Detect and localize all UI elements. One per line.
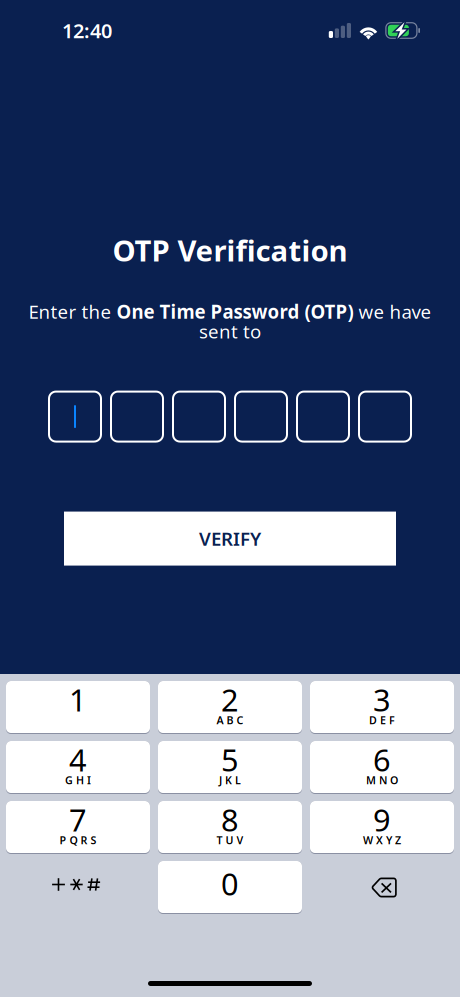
staticText: W X Y Z — [363, 833, 401, 847]
staticText: J K L — [219, 773, 241, 787]
button[interactable]: OTP digit — [111, 392, 163, 442]
staticText: M N O — [366, 773, 398, 787]
staticText: 0 — [221, 863, 239, 904]
button[interactable]: OTP digit — [49, 392, 101, 442]
staticText: 5 — [221, 739, 239, 780]
staticText: G H I — [65, 773, 91, 787]
staticText: OTP Verification — [112, 230, 347, 269]
button[interactable]: Symbols — [6, 861, 150, 913]
staticText: 2 — [221, 679, 239, 720]
button[interactable]: Delete — [310, 861, 454, 913]
button[interactable]: 2 — [158, 681, 302, 734]
button[interactable]: 8 — [158, 801, 302, 854]
staticText: Enter the One Time Password (OTP) we hav… — [28, 299, 431, 324]
staticText: 9 — [373, 799, 391, 840]
button[interactable]: 0 — [158, 861, 302, 914]
button[interactable]: OTP digit — [235, 392, 287, 442]
staticText: 4 — [69, 739, 87, 780]
staticText: sent to — [199, 319, 261, 344]
staticText: 3 — [373, 679, 391, 720]
staticText: 1 — [69, 679, 87, 720]
button[interactable]: 1 — [6, 681, 150, 734]
staticText: 6 — [373, 739, 391, 780]
button[interactable]: 5 — [158, 741, 302, 794]
staticText: VERIFY — [199, 526, 261, 551]
button[interactable]: 3 — [310, 681, 454, 734]
staticText: 8 — [221, 799, 239, 840]
staticText: 12:40 — [62, 17, 112, 44]
staticText: 7 — [69, 799, 87, 840]
staticText: D E F — [369, 713, 395, 727]
button[interactable]: OTP digit — [173, 392, 225, 442]
staticText: P Q R S — [59, 833, 96, 847]
button[interactable]: 4 — [6, 741, 150, 794]
button[interactable]: 6 — [310, 741, 454, 794]
button[interactable]: OTP digit — [359, 392, 411, 442]
button[interactable]: VERIFY — [64, 512, 396, 566]
button[interactable]: OTP digit — [297, 392, 349, 442]
button[interactable]: 7 — [6, 801, 150, 854]
button[interactable]: 9 — [310, 801, 454, 854]
staticText: T U V — [216, 833, 243, 847]
staticText: A B C — [216, 713, 243, 727]
